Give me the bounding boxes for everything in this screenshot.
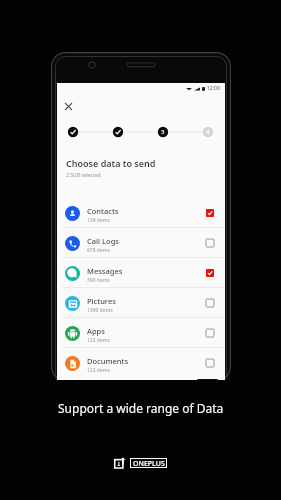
button[interactable]: Not selected xyxy=(203,236,217,250)
button[interactable]: Messages xyxy=(57,258,225,288)
staticText: 390 items xyxy=(87,277,110,284)
button[interactable]: Apps xyxy=(57,318,225,348)
staticText: 2.5GB selected xyxy=(66,172,101,179)
staticText: 139 items xyxy=(87,217,110,224)
staticText: ONEPLUS xyxy=(133,459,165,467)
staticText: Pictures xyxy=(87,296,116,306)
staticText: 122 items xyxy=(87,337,110,344)
staticText: 3 xyxy=(161,128,165,136)
staticText: 678 items xyxy=(87,247,110,254)
staticText: Contacts xyxy=(87,206,119,216)
staticText: Documents xyxy=(87,356,129,366)
button[interactable]: Not selected xyxy=(203,296,217,310)
staticText: Messages xyxy=(87,266,123,276)
button[interactable]: Close xyxy=(61,98,75,114)
button[interactable]: Selected xyxy=(203,266,217,280)
staticText: 122 items xyxy=(87,367,110,374)
button[interactable]: Documents xyxy=(57,348,225,378)
button[interactable]: Call Logs xyxy=(57,228,225,258)
button[interactable]: Not selected xyxy=(203,356,217,370)
staticText: Call Logs xyxy=(87,236,119,246)
staticText: Support a wide range of Data xyxy=(58,400,224,416)
staticText: 1390 items xyxy=(87,307,113,314)
staticText: 4 xyxy=(206,128,210,136)
button[interactable]: Not selected xyxy=(203,326,217,340)
button[interactable]: Selected xyxy=(203,206,217,220)
button[interactable]: Pictures xyxy=(57,288,225,318)
button[interactable]: Contacts xyxy=(57,198,225,228)
button[interactable]: Next xyxy=(196,379,219,380)
staticText: Choose data to send xyxy=(66,157,156,169)
staticText: Apps xyxy=(87,326,105,336)
staticText: 12:00 xyxy=(207,85,220,92)
